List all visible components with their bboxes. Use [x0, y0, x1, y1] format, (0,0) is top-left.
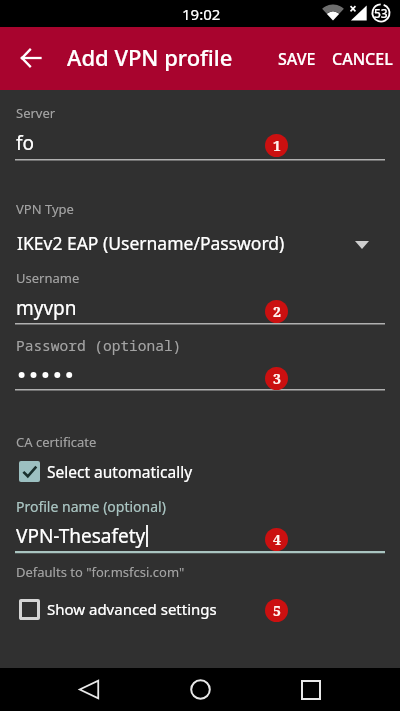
button[interactable]: Home [180, 668, 220, 711]
staticText: CANCEL [332, 48, 393, 70]
staticText: 4 [273, 530, 281, 549]
staticText: VPN Type [16, 200, 74, 218]
button[interactable]: Back [69, 668, 109, 711]
staticText: 1 [273, 136, 281, 155]
staticText: IKEv2 EAP (Username/Password) [17, 231, 285, 255]
button[interactable]: Back [6, 27, 56, 89]
staticText: Defaults to "for.msfcsi.com" [16, 563, 185, 581]
button[interactable]: Recents [291, 668, 331, 711]
button[interactable]: CANCEL [322, 39, 400, 79]
staticText: fo [16, 130, 35, 156]
staticText: Show advanced settings [47, 599, 217, 619]
staticText: Select automatically [47, 461, 193, 482]
staticText: 19:02 [182, 4, 221, 24]
button[interactable]: Show advanced settings [16, 594, 217, 624]
staticText: Password (optional) [16, 335, 182, 355]
staticText: myvpn [16, 295, 77, 321]
staticText: Add VPN profile [67, 42, 233, 72]
staticText: CA certificate [16, 433, 97, 451]
staticText: VPN-Thesafety [16, 523, 146, 549]
button[interactable]: SAVE [268, 39, 326, 79]
staticText: 53 [374, 5, 388, 21]
staticText: Profile name (optional) [16, 497, 166, 516]
button[interactable]: Select automatically [16, 456, 193, 486]
staticText: 3 [273, 369, 281, 388]
staticText: Server [16, 104, 56, 122]
staticText: SAVE [278, 48, 316, 70]
staticText: 5 [273, 601, 281, 620]
staticText: 2 [273, 302, 281, 321]
staticText: Username [16, 269, 80, 287]
